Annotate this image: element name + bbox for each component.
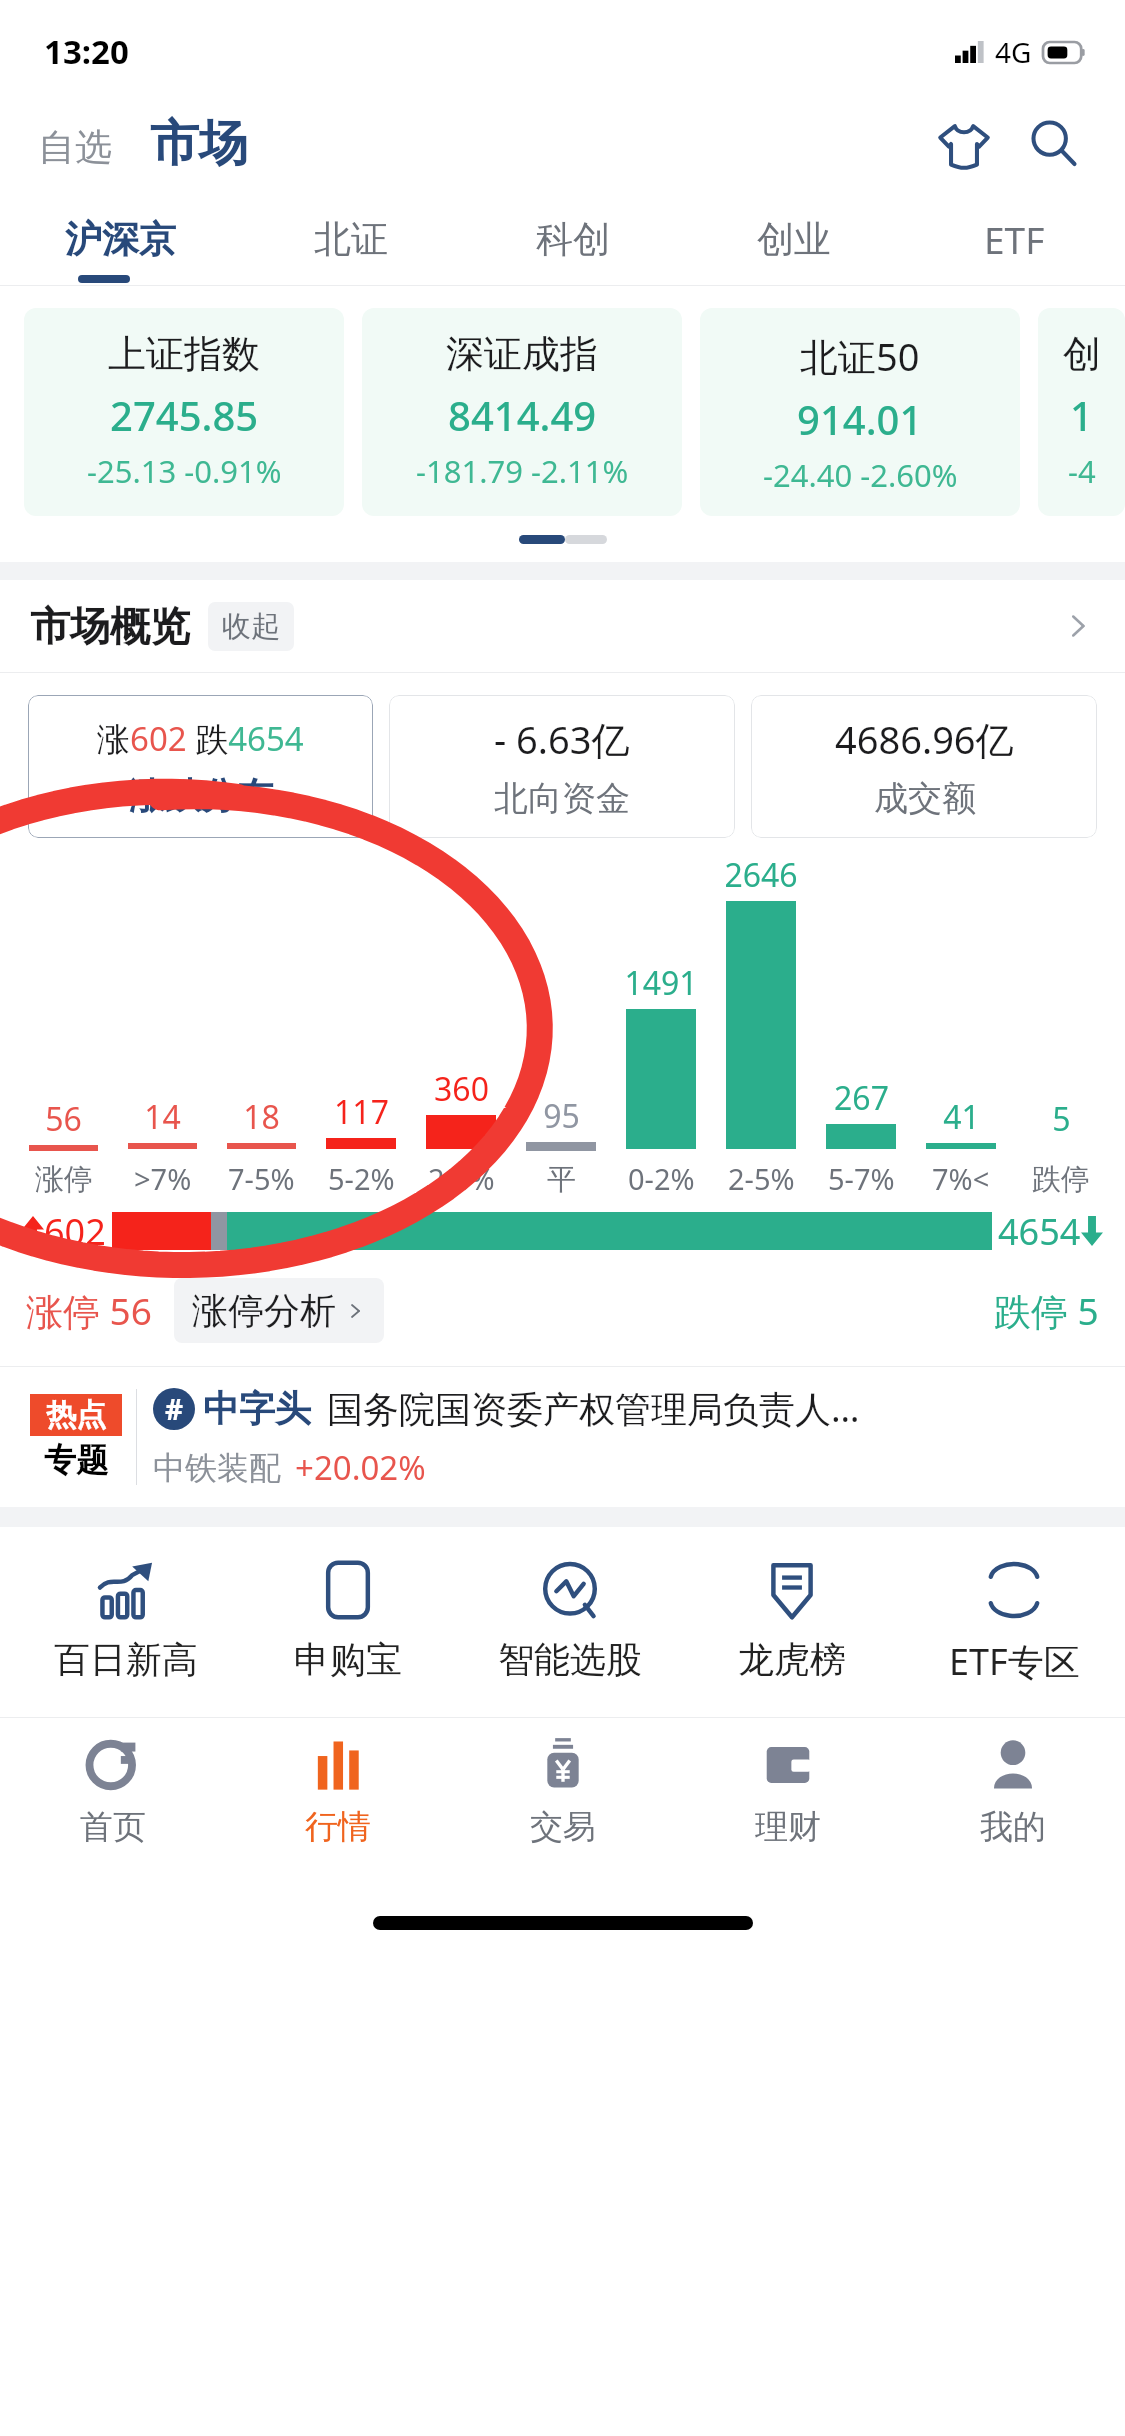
button[interactable]: 涨停分析: [174, 1278, 384, 1343]
button[interactable]: 科创: [462, 193, 683, 285]
button[interactable]: 创: [1038, 308, 1125, 516]
button[interactable]: 上证指数: [24, 308, 344, 516]
staticText: 国务院国资委产权管理局负责人…: [327, 1384, 860, 1433]
staticText: 热点: [46, 1396, 106, 1434]
staticText: 2745.85: [110, 388, 259, 442]
staticText: 1: [1070, 388, 1093, 442]
staticText: 56: [45, 1097, 82, 1141]
staticText: ETF专区: [949, 1637, 1080, 1686]
staticText: 117: [334, 1090, 389, 1134]
button[interactable]: 智能选股: [459, 1553, 681, 1686]
button[interactable]: 理财: [675, 1718, 900, 1893]
button[interactable]: - 6.63亿: [389, 695, 735, 838]
staticText: 科创: [536, 216, 610, 263]
button[interactable]: 涨602 跌4654: [28, 695, 373, 838]
button[interactable]: 市场: [142, 111, 256, 177]
staticText: 18: [243, 1095, 280, 1139]
button[interactable]: 市场概览: [0, 580, 1125, 672]
button[interactable]: 我的: [900, 1718, 1125, 1893]
staticText: 市场: [150, 113, 248, 175]
button[interactable]: 北证: [240, 193, 462, 285]
staticText: 2646: [724, 853, 798, 897]
button[interactable]: 龙虎榜: [681, 1553, 903, 1686]
button[interactable]: 申购宝: [237, 1553, 459, 1686]
staticText: 5-2%: [328, 1159, 395, 1198]
staticText: 13:20: [44, 29, 129, 74]
staticText: 5: [1052, 1097, 1071, 1141]
staticText: 360: [434, 1067, 489, 1111]
staticText: 申购宝: [294, 1637, 402, 1682]
staticText: -4: [1068, 450, 1096, 492]
staticText: 交易: [530, 1806, 596, 1848]
staticText: 2-5%: [728, 1159, 795, 1198]
staticText: -24.40 -2.60%: [763, 454, 958, 496]
button[interactable]: 4686.96亿: [751, 695, 1097, 838]
button[interactable]: 行情: [225, 1718, 450, 1893]
staticText: 理财: [755, 1806, 821, 1848]
staticText: 跌停 5: [994, 1285, 1099, 1336]
staticText: #: [165, 1390, 184, 1428]
staticText: 行情: [305, 1806, 371, 1848]
staticText: 0-2%: [628, 1159, 695, 1198]
staticText: 95: [543, 1094, 580, 1138]
staticText: 602: [44, 1207, 106, 1256]
staticText: - 6.63亿: [494, 713, 630, 765]
staticText: 百日新高: [54, 1637, 198, 1682]
staticText: 北证: [314, 216, 388, 263]
staticText: -25.13 -0.91%: [87, 450, 282, 492]
staticText: 2-0%: [428, 1159, 495, 1198]
button[interactable]: 沪深京: [0, 193, 240, 285]
staticText: 41: [943, 1095, 980, 1139]
staticText: 智能选股: [498, 1637, 642, 1682]
staticText: 平: [547, 1161, 576, 1198]
button[interactable]: 创业: [683, 193, 904, 285]
staticText: -181.79 -2.11%: [416, 450, 629, 492]
button[interactable]: ETF: [904, 193, 1125, 285]
staticText: 267: [834, 1076, 889, 1120]
button[interactable]: 北证50: [700, 308, 1020, 516]
staticText: 首页: [80, 1806, 146, 1848]
staticText: 7-5%: [228, 1159, 295, 1198]
staticText: 北证50: [800, 330, 920, 382]
button[interactable]: 自选: [30, 118, 120, 177]
button[interactable]: ETF专区: [903, 1553, 1125, 1690]
staticText: 专题: [44, 1440, 108, 1480]
staticText: 涨602 跌4654: [97, 716, 304, 761]
staticText: 沪深京: [65, 216, 176, 263]
button[interactable]: 首页: [0, 1718, 225, 1893]
staticText: 上证指数: [108, 330, 260, 378]
staticText: 龙虎榜: [738, 1637, 846, 1682]
staticText: 创: [1063, 330, 1101, 378]
button[interactable]: Theme: [927, 107, 1001, 181]
staticText: 涨停分析: [192, 1288, 336, 1333]
staticText: +20.02%: [295, 1445, 426, 1490]
staticText: 涨停: [35, 1161, 93, 1198]
button[interactable]: 百日新高: [14, 1553, 237, 1686]
staticText: 收起: [222, 608, 280, 645]
staticText: 7%<: [932, 1159, 990, 1198]
staticText: 中字头: [203, 1386, 311, 1431]
button[interactable]: 交易: [450, 1718, 675, 1893]
staticText: 自选: [38, 124, 112, 171]
staticText: 深证成指: [446, 330, 598, 378]
staticText: 北向资金: [494, 777, 630, 820]
staticText: 8414.49: [448, 388, 597, 442]
staticText: 我的: [980, 1806, 1046, 1848]
button[interactable]: Search: [1017, 107, 1091, 181]
button[interactable]: 深证成指: [362, 308, 682, 516]
staticText: 1491: [624, 961, 698, 1005]
staticText: 市场概览: [30, 601, 190, 651]
staticText: 创业: [757, 216, 831, 263]
staticText: ETF: [984, 214, 1045, 264]
staticText: 中铁装配: [153, 1448, 281, 1488]
other: More: [1061, 609, 1095, 643]
staticText: 成交额: [874, 777, 976, 820]
staticText: 涨跌分布: [129, 773, 273, 818]
staticText: 14: [144, 1095, 181, 1139]
staticText: >7%: [134, 1159, 192, 1198]
staticText: 涨停 56: [26, 1285, 152, 1336]
staticText: 5-7%: [828, 1159, 895, 1198]
button[interactable]: 热点: [0, 1367, 1125, 1507]
staticText: 914.01: [797, 392, 923, 446]
staticText: 4686.96亿: [835, 713, 1014, 765]
